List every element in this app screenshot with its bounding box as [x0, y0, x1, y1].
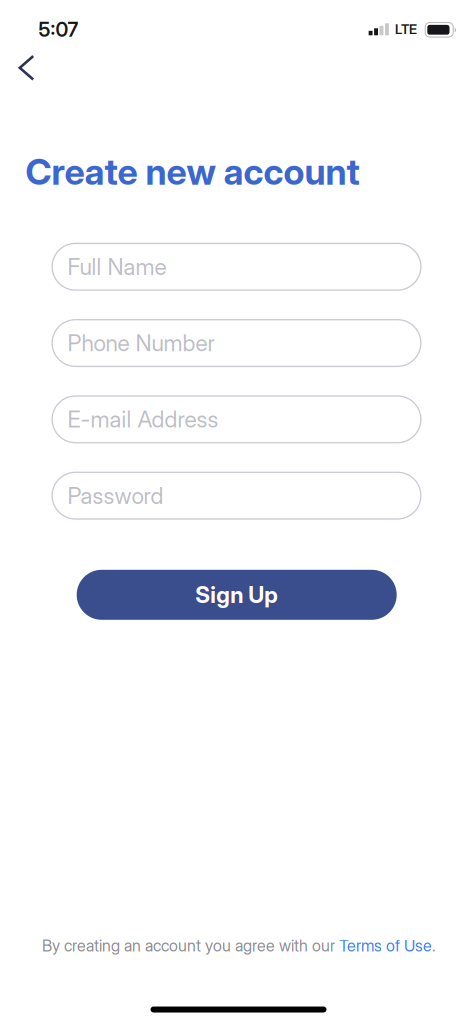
button[interactable] — [18, 55, 35, 81]
staticText: Phone Number — [67, 330, 214, 356]
button[interactable]: Terms of Use — [339, 936, 432, 955]
staticText: Password — [67, 482, 163, 509]
button[interactable]: Sign Up — [77, 570, 397, 620]
staticText: 5:07 — [38, 18, 78, 41]
button[interactable]: E-mail Address — [51, 395, 421, 443]
button[interactable]: Phone Number — [51, 319, 421, 367]
button[interactable]: Password — [51, 472, 421, 520]
staticText: Terms of Use — [339, 936, 432, 955]
button[interactable]: Full Name — [51, 243, 421, 291]
staticText: . — [432, 936, 436, 955]
staticText: By creating an account you agree with ou… — [42, 936, 339, 955]
staticText: Full Name — [67, 253, 166, 280]
staticText: Sign Up — [195, 581, 278, 608]
staticText: E-mail Address — [67, 406, 218, 433]
staticText: LTE — [395, 21, 417, 37]
staticText: Create new account — [25, 150, 359, 193]
